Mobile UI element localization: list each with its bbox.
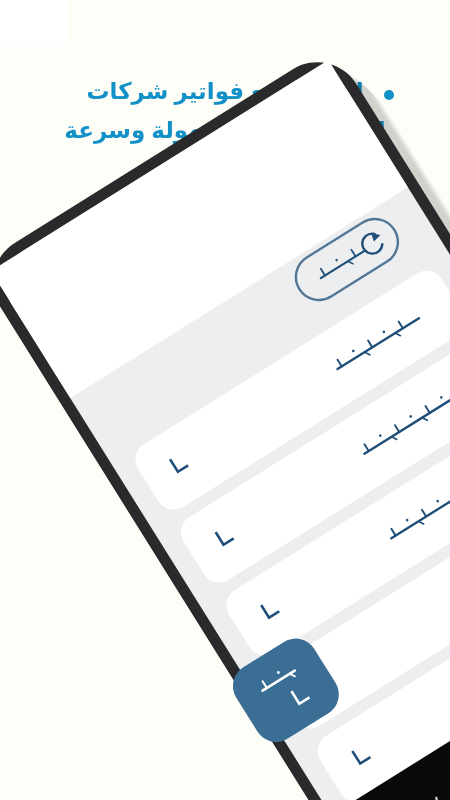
- button[interactable]: Home: [200, 588, 236, 624]
- button[interactable]: Recents: [148, 535, 184, 571]
- button[interactable]: تحديث: [358, 310, 420, 364]
- button[interactable]: Back: [254, 645, 290, 681]
- button[interactable]: دفع: [152, 472, 214, 530]
- staticText: ادفع جميع فواتير شركات: [86, 74, 364, 105]
- staticText: الاتصالات بكل سهولة وسرعة: [64, 113, 386, 144]
